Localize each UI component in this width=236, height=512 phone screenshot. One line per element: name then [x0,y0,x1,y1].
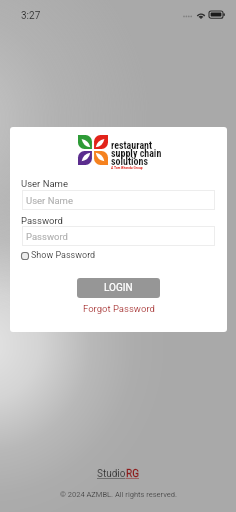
staticText: 3:27 [21,10,41,22]
button[interactable]: Show Password [21,250,96,261]
button[interactable]: LOGIN [77,278,160,298]
staticText: RG [126,468,139,480]
button[interactable]: Password [22,226,215,246]
staticText: © 2024 AZMBL. All rights reserved. [60,490,177,499]
staticText: Studio [97,468,126,480]
other: Battery [209,11,226,19]
staticText: Password [21,215,63,226]
staticText: User Name [21,178,68,189]
button[interactable]: Forgot Password [83,303,155,314]
button[interactable]: User Name [22,190,215,210]
staticText: Forgot Password [83,303,155,314]
other: Wi-Fi [196,11,206,19]
staticText: Password [26,231,68,242]
button[interactable]: Studio [97,468,139,480]
staticText: supply chain [111,148,162,160]
staticText: LOGIN [104,282,133,294]
staticText: solutions [111,156,148,168]
staticText: Show Password [31,250,96,261]
staticText: User Name [26,195,73,206]
staticText: restaurant [111,140,153,152]
staticText: A Tom Bhandu Group [111,165,143,169]
